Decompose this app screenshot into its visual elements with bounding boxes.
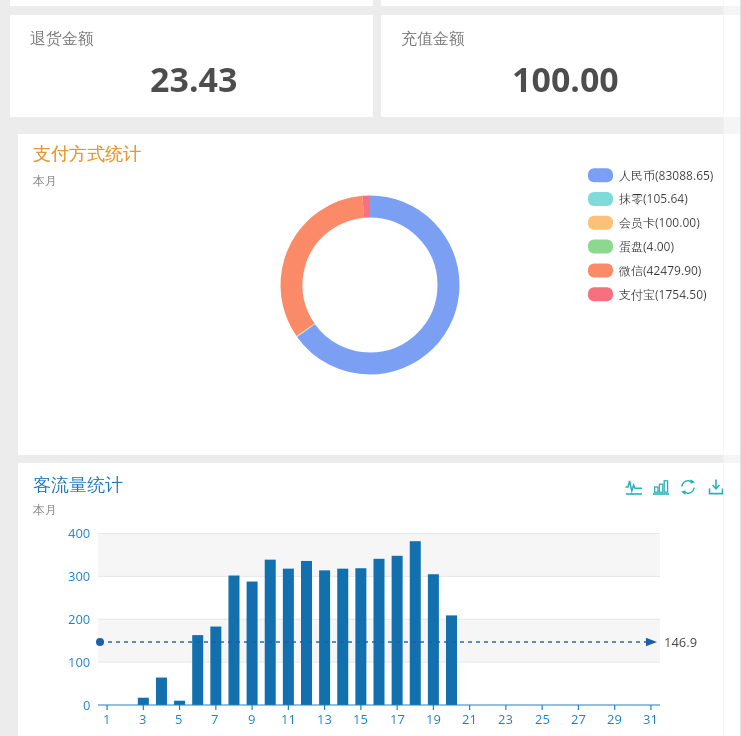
staticText: 400 bbox=[68, 524, 91, 542]
staticText: 本月 bbox=[33, 173, 57, 188]
button[interactable] bbox=[585, 188, 720, 208]
staticText: 0 bbox=[83, 696, 91, 714]
button[interactable] bbox=[18, 134, 741, 455]
staticText: 29 bbox=[607, 710, 622, 728]
staticText: 19 bbox=[426, 710, 441, 728]
staticText: 27 bbox=[571, 710, 586, 728]
staticText: 100.00 bbox=[512, 56, 619, 102]
button[interactable] bbox=[10, 15, 373, 117]
staticText: 7 bbox=[211, 710, 219, 728]
staticText: 5 bbox=[175, 710, 183, 728]
button[interactable] bbox=[585, 236, 720, 256]
staticText: 31 bbox=[643, 710, 658, 728]
staticText: 3 bbox=[139, 710, 147, 728]
staticText: 退货金额 bbox=[30, 29, 94, 49]
staticText: 9 bbox=[248, 710, 256, 728]
button[interactable] bbox=[679, 478, 697, 496]
staticText: 人民币(83088.65) bbox=[619, 167, 714, 183]
staticText: 本月 bbox=[33, 502, 57, 517]
button[interactable] bbox=[585, 284, 720, 304]
staticText: 13 bbox=[317, 710, 332, 728]
button[interactable] bbox=[707, 478, 725, 496]
button[interactable] bbox=[585, 165, 720, 185]
button[interactable] bbox=[585, 212, 720, 232]
staticText: 蛋盘(4.00) bbox=[619, 238, 675, 254]
button[interactable] bbox=[625, 478, 643, 496]
staticText: 23.43 bbox=[150, 56, 238, 102]
staticText: 11 bbox=[281, 710, 296, 728]
button[interactable] bbox=[585, 260, 720, 280]
staticText: 15 bbox=[353, 710, 368, 728]
staticText: 客流量统计 bbox=[33, 474, 123, 497]
button[interactable] bbox=[381, 15, 741, 117]
staticText: 21 bbox=[462, 710, 477, 728]
staticText: 23 bbox=[498, 710, 513, 728]
button[interactable] bbox=[18, 463, 741, 736]
staticText: 支付方式统计 bbox=[33, 143, 141, 166]
staticText: 146.9 bbox=[664, 633, 698, 651]
staticText: 200 bbox=[68, 610, 91, 628]
staticText: 充值金额 bbox=[401, 29, 465, 49]
staticText: 抹零(105.64) bbox=[619, 190, 688, 206]
staticText: 300 bbox=[68, 567, 91, 585]
staticText: 1 bbox=[103, 710, 111, 728]
staticText: 支付宝(1754.50) bbox=[619, 286, 707, 302]
staticText: 100 bbox=[68, 653, 91, 671]
staticText: 25 bbox=[535, 710, 550, 728]
button[interactable] bbox=[652, 478, 670, 496]
staticText: 17 bbox=[390, 710, 405, 728]
staticText: 会员卡(100.00) bbox=[619, 214, 700, 230]
staticText: 微信(42479.90) bbox=[619, 262, 702, 278]
